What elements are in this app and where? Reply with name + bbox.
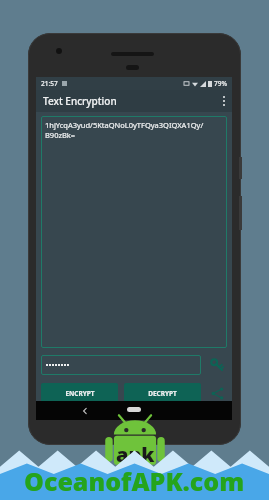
staticText: 21:57 (41, 79, 58, 88)
staticText: 79% (214, 79, 227, 88)
staticText: 1hjYcqA3yud/5KtaQNoL0yTFQya3QIQXA1Qy/B90… (45, 120, 223, 140)
button[interactable]: More options (223, 96, 225, 106)
staticText: Text Encryption (43, 94, 117, 108)
staticText: apk (116, 441, 155, 468)
button[interactable]: Generate key (207, 355, 227, 375)
button[interactable]: Share (207, 383, 227, 403)
button[interactable] (41, 355, 201, 375)
button[interactable]: 1hjYcqA3yud/5KtaQNoL0yTFQya3QIQXA1Qy/B90… (41, 116, 227, 348)
button[interactable]: DECRYPT (124, 383, 201, 403)
button[interactable]: ENCRYPT (41, 383, 118, 403)
staticText: DECRYPT (148, 389, 177, 398)
button[interactable]: Home (127, 407, 141, 412)
staticText: ENCRYPT (65, 389, 95, 398)
button[interactable]: Back (80, 406, 90, 416)
staticText: OceanofAPK.com (24, 464, 245, 498)
